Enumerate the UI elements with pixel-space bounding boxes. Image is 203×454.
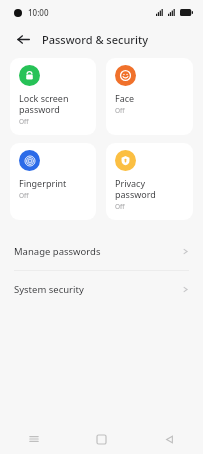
staticText: Off	[115, 106, 125, 115]
staticText: Off	[115, 202, 125, 211]
staticText: Face	[115, 92, 135, 104]
button[interactable]: Lock screen password	[10, 58, 96, 135]
staticText: Manage passwords	[14, 245, 101, 258]
button[interactable]: Back	[12, 28, 34, 50]
button[interactable]: Privacy password	[106, 143, 193, 220]
button[interactable]: Manage passwords	[0, 233, 203, 270]
staticText: Privacy password	[115, 177, 187, 200]
button[interactable]: Home	[67, 424, 135, 454]
button[interactable]: Fingerprint	[10, 143, 96, 220]
button[interactable]: Back	[135, 424, 203, 454]
button[interactable]: Face	[106, 58, 193, 135]
button[interactable]: System security	[0, 271, 203, 308]
staticText: 10:00	[28, 7, 49, 18]
staticText: Lock screen password	[19, 92, 69, 115]
staticText: Off	[19, 191, 29, 200]
staticText: Password & security	[42, 32, 148, 47]
staticText: Off	[19, 117, 29, 126]
staticText: System security	[14, 283, 84, 296]
button[interactable]: Recent apps	[0, 424, 67, 454]
staticText: Fingerprint	[19, 177, 67, 189]
